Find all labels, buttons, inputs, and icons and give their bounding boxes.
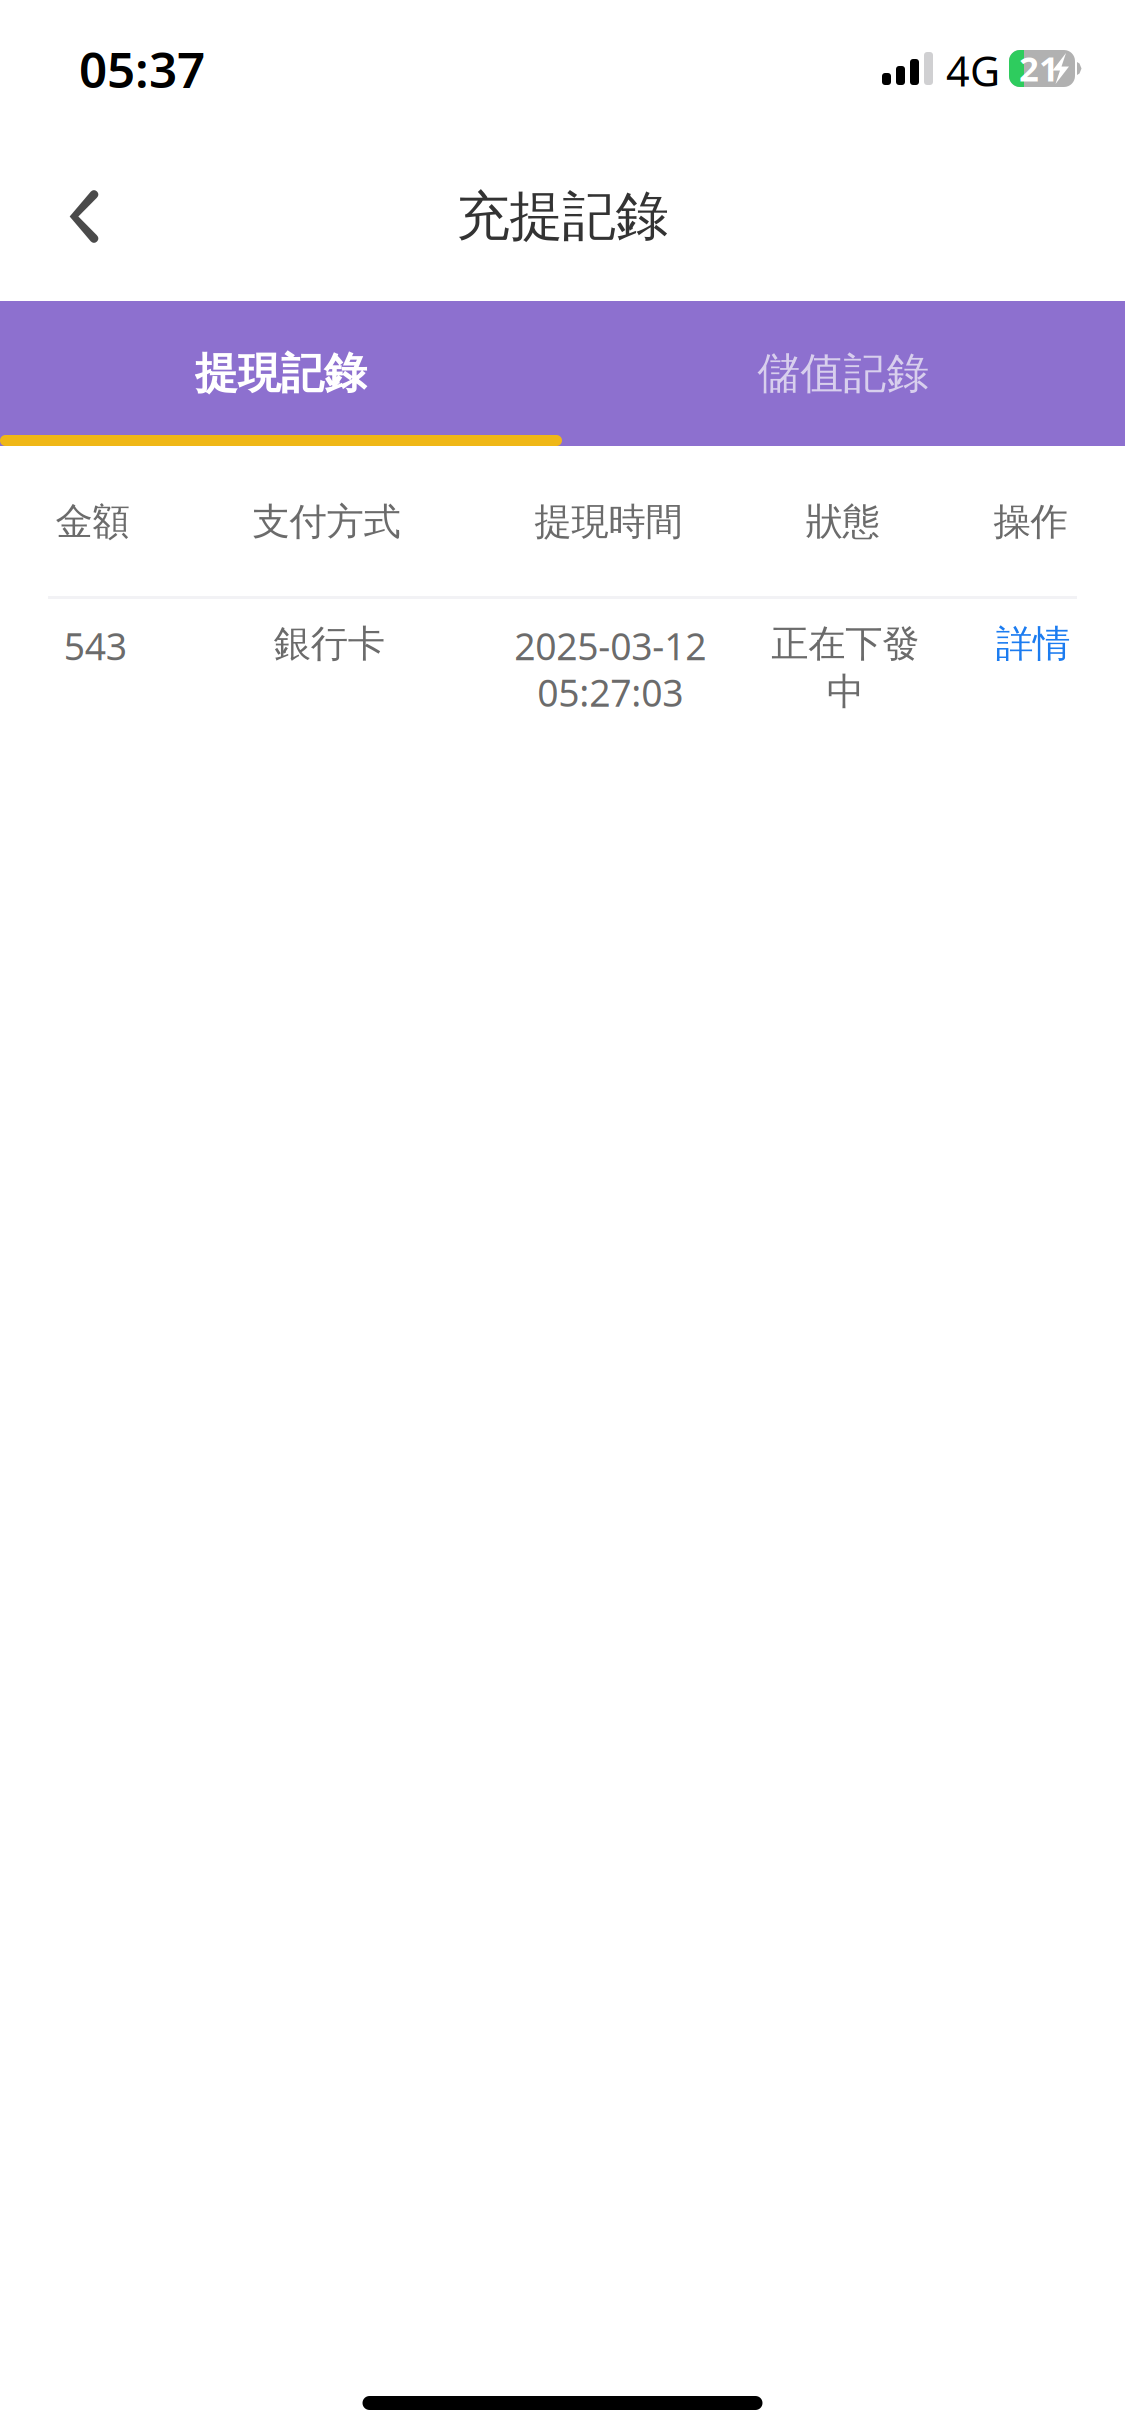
button[interactable]: 儲值記錄 (562, 301, 1125, 446)
staticText: 2025-03-12 05:27:03 (514, 621, 706, 717)
staticText: 狀態 (805, 499, 879, 545)
button[interactable]: 提現記錄 (0, 301, 562, 446)
staticText: 提現時間 (534, 499, 682, 545)
staticText: 儲值記錄 (757, 347, 929, 400)
staticText: 正在下發 中 (771, 621, 919, 715)
staticText: 提現記錄 (195, 347, 367, 400)
staticText: 充提記錄 (456, 184, 668, 249)
staticText: 操作 (993, 499, 1067, 545)
staticText: 4G (946, 43, 1000, 98)
staticText: 05:37 (79, 36, 205, 101)
staticText: 21 (1019, 45, 1059, 91)
staticText: 金額 (55, 499, 129, 545)
button[interactable]: Back (29, 161, 139, 271)
staticText: 詳情 (996, 621, 1070, 667)
button[interactable]: 詳情 (12, 599, 1113, 667)
staticText: 543 (63, 621, 126, 671)
staticText: 支付方式 (252, 499, 400, 545)
staticText: 銀行卡 (273, 621, 384, 667)
